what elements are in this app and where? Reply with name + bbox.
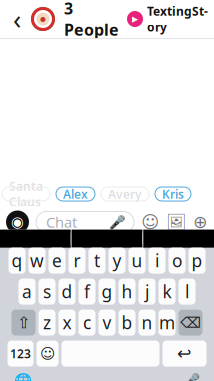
- button[interactable]: z: [38, 310, 55, 336]
- button[interactable]: ☺: [36, 341, 58, 367]
- staticText: g: [101, 280, 112, 303]
- staticText: n: [141, 311, 152, 334]
- button[interactable]: ⌫: [178, 310, 202, 336]
- button[interactable]: Avery: [101, 187, 149, 201]
- staticText: u: [131, 249, 142, 272]
- button[interactable]: More: [193, 212, 208, 232]
- button[interactable]: Santa Claus: [2, 187, 50, 201]
- button[interactable]: Alex: [56, 187, 95, 201]
- staticText: Avery: [108, 186, 142, 202]
- button[interactable]: o: [168, 248, 185, 274]
- staticText: p: [191, 249, 202, 272]
- staticText: t: [94, 249, 100, 272]
- staticText: ↩: [177, 344, 192, 363]
- button[interactable]: b: [118, 310, 135, 336]
- staticText: k: [162, 280, 171, 303]
- button[interactable]: k: [158, 279, 175, 305]
- button[interactable]: y: [108, 248, 125, 274]
- staticText: Alex: [63, 186, 88, 202]
- button[interactable]: m: [158, 310, 175, 336]
- staticText: s: [43, 280, 51, 303]
- staticText: ●: [40, 15, 46, 23]
- button[interactable]: n: [138, 310, 155, 336]
- staticText: e: [52, 249, 62, 272]
- staticText: 123: [10, 346, 31, 362]
- staticText: f: [84, 280, 90, 303]
- button[interactable]: h: [118, 279, 135, 305]
- staticText: 🖼: [166, 213, 186, 231]
- staticText: 🌐: [14, 373, 32, 381]
- staticText: a: [22, 280, 32, 303]
- button[interactable]: i: [148, 248, 165, 274]
- button[interactable]: f: [78, 279, 95, 305]
- staticText: z: [43, 311, 51, 334]
- button[interactable]: ↩: [162, 341, 206, 367]
- staticText: ◉: [11, 214, 24, 230]
- staticText: x: [62, 311, 71, 334]
- staticText: y: [112, 249, 121, 272]
- staticText: Santa Claus: [9, 178, 43, 210]
- staticText: ☺: [40, 345, 55, 362]
- button[interactable]: Chat: [36, 211, 134, 232]
- button[interactable]: c: [78, 310, 95, 336]
- button[interactable]: Back: [6, 4, 28, 34]
- button[interactable]: l: [178, 279, 195, 305]
- staticText: d: [61, 280, 72, 303]
- staticText: Chat: [46, 212, 77, 232]
- staticText: ☺: [141, 212, 159, 232]
- staticText: TextingStory: [147, 3, 208, 35]
- button[interactable]: g: [98, 279, 115, 305]
- staticText: w: [30, 249, 44, 272]
- staticText: i: [155, 249, 159, 272]
- button[interactable]: TextingStory: [127, 3, 208, 35]
- button[interactable]: x: [58, 310, 75, 336]
- button[interactable]: j: [138, 279, 155, 305]
- button[interactable]: ⇧: [11, 310, 35, 336]
- staticText: j: [145, 280, 149, 303]
- staticText: o: [172, 249, 182, 272]
- button[interactable]: r: [68, 248, 85, 274]
- staticText: Kris: [162, 186, 184, 202]
- staticText: ⇧: [17, 313, 30, 332]
- staticText: r: [73, 249, 80, 272]
- staticText: ⊕: [193, 212, 208, 232]
- button[interactable]: a: [18, 279, 35, 305]
- button[interactable]: Kris: [155, 187, 191, 201]
- button[interactable]: Photos: [166, 213, 186, 231]
- staticText: 🎤: [109, 214, 126, 230]
- staticText: q: [11, 249, 22, 272]
- staticText: ▶: [132, 14, 138, 24]
- button[interactable]: t: [88, 248, 105, 274]
- button[interactable]: d: [58, 279, 75, 305]
- staticText: ⌫: [180, 314, 201, 331]
- button[interactable]: [61, 341, 159, 367]
- staticText: m: [159, 311, 175, 334]
- button[interactable]: q: [8, 248, 25, 274]
- button[interactable]: v: [98, 310, 115, 336]
- staticText: 🎤: [182, 373, 200, 381]
- staticText: c: [83, 311, 91, 334]
- button[interactable]: u: [128, 248, 145, 274]
- staticText: h: [121, 280, 132, 303]
- button[interactable]: e: [48, 248, 65, 274]
- staticText: 3 People: [64, 0, 119, 40]
- button[interactable]: s: [38, 279, 55, 305]
- button[interactable]: Emoji: [141, 212, 159, 232]
- button[interactable]: p: [188, 248, 205, 274]
- staticText: b: [121, 311, 132, 334]
- staticText: l: [185, 280, 189, 303]
- staticText: v: [102, 311, 111, 334]
- button[interactable]: 123: [7, 341, 33, 367]
- staticText: ‹: [13, 1, 21, 37]
- button[interactable]: Camera: [6, 210, 29, 233]
- button[interactable]: w: [28, 248, 45, 274]
